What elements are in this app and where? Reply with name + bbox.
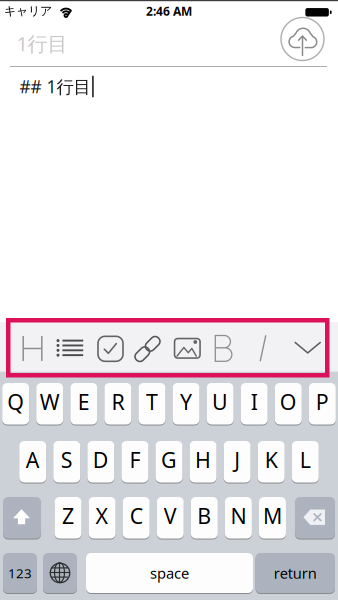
button[interactable]: V [157, 497, 184, 538]
button[interactable]: List [56, 335, 84, 361]
staticText: N [230, 502, 246, 530]
staticText: L [300, 446, 311, 474]
button[interactable]: 123 [3, 553, 37, 593]
staticText: H [195, 446, 211, 474]
staticText: D [93, 446, 109, 474]
button[interactable]: I [241, 383, 268, 424]
staticText: O [280, 388, 297, 416]
staticText: space [150, 563, 189, 583]
staticText: J [234, 446, 240, 474]
button[interactable]: Italic [255, 335, 271, 363]
staticText: A [26, 446, 40, 474]
staticText: P [316, 388, 329, 416]
button[interactable]: U [207, 383, 234, 424]
button[interactable]: Q [2, 383, 29, 424]
button[interactable]: G [155, 441, 182, 482]
button[interactable]: K [258, 441, 285, 482]
button[interactable]: N [225, 497, 252, 538]
staticText: 2:46 AM [146, 3, 192, 19]
staticText: V [164, 502, 177, 530]
button[interactable]: space [86, 553, 253, 593]
staticText: キャリア [4, 4, 52, 18]
button[interactable]: J [224, 441, 251, 482]
staticText: F [129, 446, 140, 474]
button[interactable]: Checklist [98, 336, 123, 361]
button[interactable]: return [255, 553, 335, 593]
staticText: return [274, 563, 317, 583]
staticText: G [161, 446, 177, 474]
button[interactable]: D [87, 441, 114, 482]
button[interactable]: W [36, 383, 63, 424]
button[interactable]: Shift [3, 497, 41, 538]
staticText: Y [180, 388, 192, 416]
staticText: U [212, 388, 228, 416]
staticText: W [40, 388, 60, 416]
button[interactable]: Z [54, 497, 81, 538]
button[interactable]: Y [172, 383, 199, 424]
button[interactable]: Delete [295, 497, 335, 538]
button[interactable]: Upload [281, 17, 324, 60]
button[interactable]: R [104, 383, 131, 424]
button[interactable]: C [123, 497, 150, 538]
staticText: Z [62, 502, 74, 530]
button[interactable]: M [259, 497, 286, 538]
button[interactable]: S [53, 441, 80, 482]
staticText: ## 1行目 [19, 75, 90, 98]
button[interactable]: Link [135, 336, 161, 362]
button[interactable]: O [275, 383, 302, 424]
staticText: B [197, 502, 211, 530]
button[interactable]: X [89, 497, 116, 538]
button[interactable]: A [19, 441, 46, 482]
button[interactable]: F [121, 441, 148, 482]
button[interactable]: E [70, 383, 97, 424]
button[interactable]: Heading [21, 335, 45, 363]
button[interactable]: Bold [213, 335, 235, 363]
button[interactable]: Next keyboard [43, 553, 77, 593]
staticText: Q [7, 388, 24, 416]
staticText: C [130, 502, 143, 530]
button[interactable]: P [309, 383, 336, 424]
staticText: R [111, 388, 124, 416]
staticText: E [78, 388, 90, 416]
staticText: S [61, 446, 73, 474]
button[interactable]: Image [175, 339, 200, 358]
staticText: K [265, 446, 278, 474]
staticText: 1行目 [16, 30, 67, 57]
staticText: 123 [8, 564, 32, 582]
button[interactable]: T [138, 383, 165, 424]
staticText: T [146, 388, 158, 416]
button[interactable]: B [191, 497, 218, 538]
staticText: I [251, 388, 258, 416]
button[interactable]: H [190, 441, 217, 482]
button[interactable]: L [292, 441, 319, 482]
staticText: X [96, 502, 109, 530]
button[interactable]: Dismiss keyboard [293, 340, 323, 356]
staticText: M [263, 502, 282, 530]
